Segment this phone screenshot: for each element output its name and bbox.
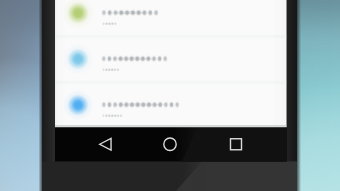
button[interactable]: Home <box>142 127 198 161</box>
button[interactable]: Contact 1 <box>55 0 286 36</box>
button[interactable]: Recent apps <box>208 127 264 161</box>
button[interactable]: Back <box>78 127 134 161</box>
button[interactable]: Contact 2 <box>55 36 286 82</box>
button[interactable]: Contact 3 <box>55 82 286 127</box>
